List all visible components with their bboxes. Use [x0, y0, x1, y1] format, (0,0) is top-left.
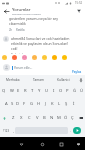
button[interactable]: Home [36, 138, 48, 150]
staticText: X [20, 115, 23, 121]
button[interactable]: E [15, 84, 22, 97]
button[interactable]: Emoji reaction [61, 54, 68, 61]
staticText: Y [38, 88, 41, 94]
button[interactable]: Emoji reaction [21, 54, 28, 61]
button[interactable]: V [33, 111, 41, 125]
staticText: Q [2, 88, 6, 94]
staticText: Ü [80, 88, 84, 94]
button[interactable]: H [35, 97, 42, 111]
button[interactable]: G [28, 97, 35, 111]
staticText: K [51, 101, 54, 107]
staticText: Ğ [73, 88, 77, 94]
button[interactable]: M [55, 111, 62, 125]
staticText: Kullanici [57, 78, 70, 82]
button[interactable]: Z [9, 111, 17, 125]
button[interactable]: U [43, 84, 50, 97]
button[interactable]: Recent apps [55, 138, 67, 150]
button[interactable]: Ş [63, 97, 70, 111]
staticText: . [70, 128, 71, 133]
button[interactable]: J [42, 97, 49, 111]
button[interactable]: Comma [11, 127, 15, 134]
staticText: gosterilen yorumu veya bir sey [9, 16, 58, 21]
button[interactable]: Voice input [76, 75, 85, 84]
button[interactable]: Send [73, 127, 81, 134]
staticText: Ö [64, 115, 68, 121]
staticText: C [28, 115, 31, 121]
button[interactable]: Tamam [26, 75, 51, 84]
button[interactable]: P [64, 84, 71, 97]
button[interactable]: İ [70, 97, 77, 111]
staticText: ahmet84 Sonuclari ve cok hazirladim [11, 36, 70, 41]
button[interactable]: Ç [69, 111, 76, 125]
button[interactable]: gosterilen yorumu veya bir sey [0, 16, 85, 32]
staticText: T [31, 88, 34, 94]
button[interactable]: W [8, 84, 15, 97]
staticText: M [57, 115, 61, 121]
button[interactable]: Ö [62, 111, 69, 125]
button[interactable]: Back [15, 138, 27, 150]
button[interactable]: Ü [78, 84, 85, 97]
staticText: I [53, 88, 55, 94]
staticText: , [13, 128, 14, 133]
staticText: Ç [71, 115, 74, 121]
staticText: Ş [65, 101, 68, 107]
staticText: Tamam [33, 78, 45, 82]
button[interactable]: K [49, 97, 56, 111]
button[interactable]: F [21, 97, 28, 111]
staticText: L [58, 101, 61, 107]
button[interactable]: Emoji reaction [11, 54, 18, 61]
staticText: E [17, 88, 20, 94]
staticText: V [36, 115, 39, 121]
button[interactable]: Y [36, 84, 43, 97]
button[interactable]: A [3, 97, 9, 111]
button[interactable]: Back [0, 6, 12, 16]
button[interactable]: Emoji reaction [51, 54, 58, 61]
staticText: J [45, 101, 47, 107]
button[interactable]: Emoji reaction [31, 54, 38, 61]
button[interactable]: R [22, 84, 29, 97]
staticText: Merhaba [6, 78, 20, 82]
staticText: gonderen yorumu yazdiniz [12, 13, 41, 16]
staticText: Yanitla [16, 28, 25, 32]
button[interactable]: I [50, 84, 57, 97]
button[interactable]: Paylas [71, 70, 83, 74]
staticText: 15:52 [75, 1, 83, 5]
button[interactable]: O [57, 84, 64, 97]
staticText: B [43, 115, 46, 121]
staticText: S [11, 101, 14, 107]
button[interactable]: Kullanici [51, 75, 76, 84]
button[interactable]: Emoji reaction [41, 54, 48, 61]
button[interactable]: Filter [73, 6, 85, 16]
button[interactable]: Shift [0, 111, 9, 125]
button[interactable]: L [56, 97, 63, 111]
button[interactable]: X [17, 111, 25, 125]
button[interactable]: Emoji reaction [1, 54, 8, 61]
staticText: N [50, 115, 54, 121]
staticText: Paylasimlar [11, 53, 26, 54]
button[interactable]: ahmet84 Sonuclari ve cok hazirladim [0, 36, 85, 54]
button[interactable]: C [25, 111, 33, 125]
button[interactable]: Backspace [76, 111, 85, 125]
staticText: ?123 [3, 129, 10, 133]
staticText: cikarmislik [9, 21, 26, 26]
staticText: R [24, 88, 27, 94]
button[interactable]: S [9, 97, 15, 111]
staticText: İ [73, 101, 75, 107]
staticText: H [37, 101, 41, 107]
button[interactable]: D [15, 97, 21, 111]
button[interactable]: Merhaba [0, 75, 26, 84]
button[interactable]: Q [0, 84, 8, 97]
staticText: F [23, 101, 26, 107]
staticText: Yorum ekle... [14, 66, 33, 70]
button[interactable]: B [41, 111, 48, 125]
button[interactable]: T [29, 84, 36, 97]
button[interactable]: N [48, 111, 55, 125]
staticText: D [16, 101, 20, 107]
staticText: etkinlik ve paylasim olsun Sonuclari! [11, 41, 69, 46]
button[interactable]: Hide keyboard [72, 138, 84, 150]
button[interactable]: Symbols [1, 127, 11, 134]
button[interactable]: Period [68, 127, 73, 134]
button[interactable]: Ğ [71, 84, 78, 97]
staticText: W [10, 88, 14, 94]
